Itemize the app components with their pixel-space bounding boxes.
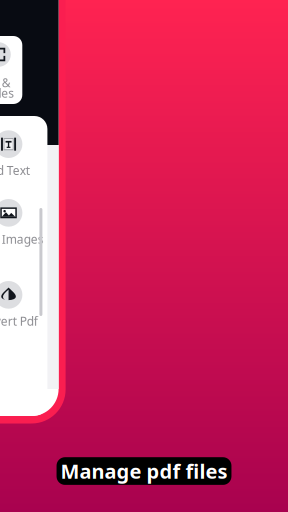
button[interactable]: Convert Pdf bbox=[0, 281, 22, 327]
button[interactable]: Scan & bbox=[0, 42, 11, 100]
button[interactable]: Images bbox=[0, 199, 22, 245]
staticText: Manage pdf files bbox=[60, 458, 227, 484]
staticText: Images bbox=[2, 231, 44, 247]
staticText: Add Text bbox=[0, 162, 30, 178]
button[interactable]: Add Text bbox=[0, 130, 22, 176]
staticText: Convert Pdf bbox=[0, 313, 38, 329]
staticText: Scan & bbox=[0, 75, 11, 91]
button[interactable]: Manage pdf files bbox=[56, 457, 231, 485]
staticText: QR codes bbox=[0, 85, 14, 101]
